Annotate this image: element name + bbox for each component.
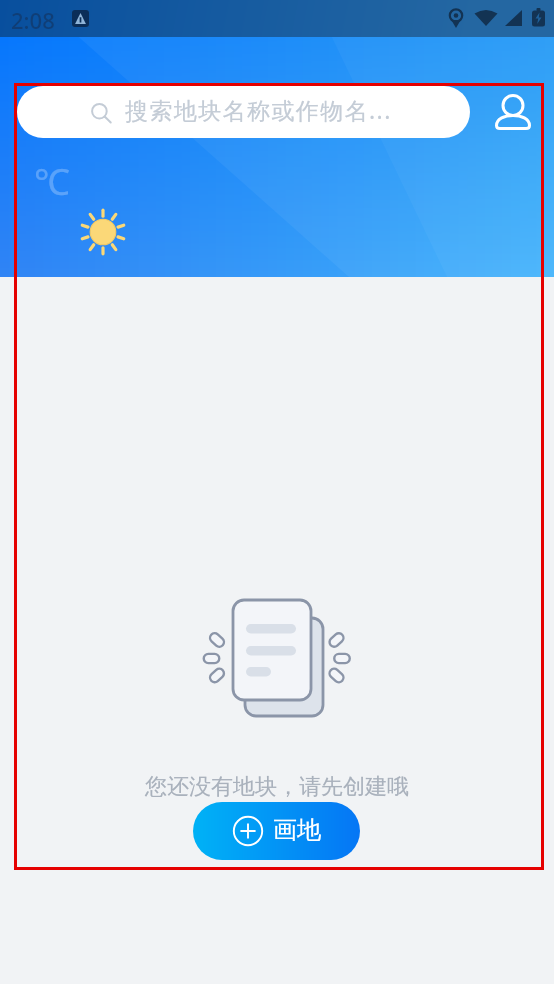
button[interactable]: 画地 (193, 802, 360, 860)
staticText: 2:08 (11, 5, 55, 35)
staticText: ℃ (34, 157, 70, 206)
button[interactable]: Profile (493, 92, 533, 132)
button[interactable]: 搜索地块名称或作物名... (17, 86, 470, 138)
staticText: 搜索地块名称或作物名... (125, 94, 392, 125)
staticText: 画地 (273, 815, 321, 845)
staticText: 您还没有地块，请先创建哦 (145, 773, 409, 801)
